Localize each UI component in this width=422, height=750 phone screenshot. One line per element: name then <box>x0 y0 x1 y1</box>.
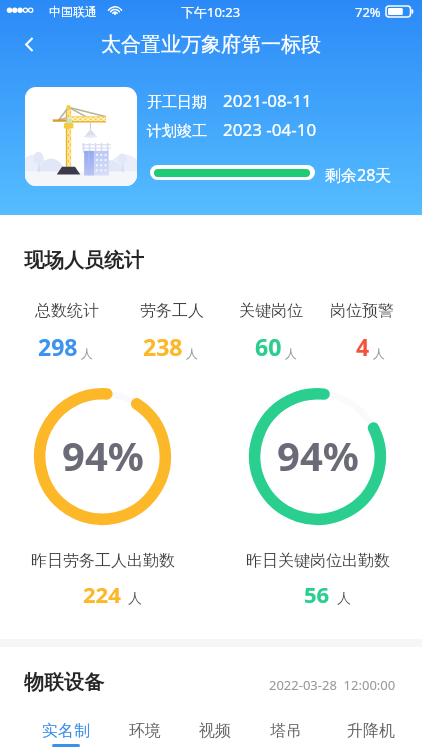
button[interactable]: 关键岗位 <box>239 301 303 332</box>
staticText: 人 <box>337 590 351 608</box>
button[interactable]: 环境 <box>117 721 173 750</box>
button[interactable]: 升降机 <box>337 721 405 750</box>
staticText: 岗位预警 <box>330 301 394 321</box>
staticText: 塔吊 <box>270 721 302 741</box>
staticText: 开工日期 <box>147 93 207 112</box>
staticText: 2021-08-11 <box>223 89 312 112</box>
staticText: 剩余28天 <box>325 164 392 186</box>
staticText: 238 <box>143 331 183 362</box>
staticText: 60 <box>255 331 282 362</box>
button[interactable]: 岗位预警 <box>330 301 394 332</box>
staticText: 人 <box>81 346 93 361</box>
staticText: 视频 <box>199 721 231 741</box>
staticText: 298 <box>38 331 78 362</box>
staticText: 2022-03-28 12:00:00 <box>269 676 396 694</box>
staticText: 72% <box>355 3 381 21</box>
staticText: 人 <box>285 346 297 361</box>
staticText: 劳务工人 <box>140 301 204 321</box>
staticText: 现场人员统计 <box>24 248 144 273</box>
button[interactable]: 劳务工人 <box>140 301 204 332</box>
staticText: 人 <box>373 346 385 361</box>
staticText: 总数统计 <box>35 301 99 321</box>
staticText: 中国联通 <box>49 4 97 19</box>
staticText: 环境 <box>129 721 161 741</box>
button[interactable]: 总数统计 <box>35 301 99 332</box>
staticText: 昨日劳务工人出勤数 <box>31 551 175 571</box>
staticText: 2023 -04-10 <box>223 118 317 141</box>
staticText: 计划竣工 <box>147 122 207 141</box>
staticText: 昨日关键岗位出勤数 <box>246 551 390 571</box>
staticText: 太合置业万象府第一标段 <box>101 32 321 57</box>
button[interactable]: 实名制 <box>32 721 100 750</box>
staticText: 224 <box>83 579 121 609</box>
staticText: 94% <box>62 428 144 482</box>
staticText: 实名制 <box>42 721 90 741</box>
staticText: 56 <box>304 579 330 609</box>
staticText: 物联设备 <box>24 670 104 695</box>
button[interactable]: 塔吊 <box>258 721 314 750</box>
staticText: 下午10:23 <box>181 3 241 21</box>
staticText: 4 <box>356 331 370 362</box>
staticText: 人 <box>186 346 198 361</box>
button[interactable]: Back <box>12 27 46 61</box>
staticText: 人 <box>128 590 142 608</box>
staticText: 关键岗位 <box>239 301 303 321</box>
staticText: 94% <box>277 428 359 482</box>
button[interactable]: 视频 <box>187 721 243 750</box>
staticText: 升降机 <box>347 721 395 741</box>
